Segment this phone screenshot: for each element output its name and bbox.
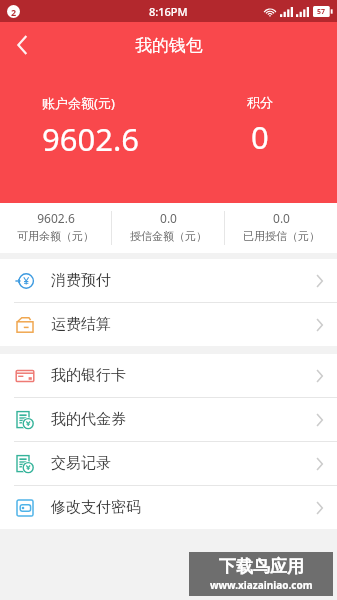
button[interactable]: 消费预付: [0, 259, 337, 302]
button[interactable]: 我的银行卡: [0, 354, 337, 397]
staticText: 交易记录: [51, 454, 111, 473]
button[interactable]: 我的代金券: [0, 398, 337, 441]
staticText: 我的银行卡: [51, 366, 126, 385]
staticText: 账户余额(元): [42, 94, 115, 112]
staticText: 已用授信（元）: [243, 229, 320, 243]
button[interactable]: 交易记录: [0, 442, 337, 485]
staticText: 积分: [247, 94, 273, 110]
button[interactable]: 修改支付密码: [0, 486, 337, 529]
staticText: www.xiazainiao.com: [210, 578, 313, 592]
staticText: 可用余额（元）: [17, 229, 94, 243]
staticText: 57: [317, 7, 326, 17]
staticText: 8:16PM: [149, 4, 188, 19]
staticText: 授信金额（元）: [130, 229, 207, 243]
staticText: 0: [251, 116, 269, 158]
staticText: 9602.6: [37, 210, 75, 226]
staticText: 运费结算: [51, 315, 111, 334]
staticText: 我的代金券: [51, 410, 126, 429]
staticText: 我的钱包: [135, 35, 203, 56]
staticText: 修改支付密码: [51, 498, 141, 517]
staticText: 0.0: [273, 210, 290, 226]
button[interactable]: 运费结算: [0, 303, 337, 346]
staticText: 消费预付: [51, 271, 111, 290]
staticText: 下载鸟应用: [219, 556, 304, 577]
staticText: 9602.6: [42, 118, 139, 160]
button[interactable]: Back: [0, 23, 44, 67]
staticText: 2: [11, 6, 17, 18]
staticText: 0.0: [160, 210, 177, 226]
